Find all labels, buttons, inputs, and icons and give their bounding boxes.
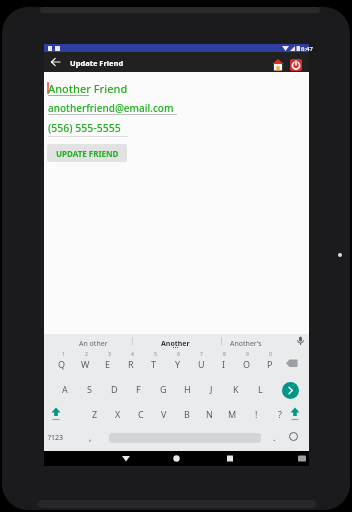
staticText: 1 [62, 351, 65, 358]
button[interactable]: N [201, 406, 217, 422]
button[interactable]: T [146, 356, 162, 372]
staticText: 2 [85, 351, 88, 358]
button[interactable]: Y [170, 356, 186, 372]
staticText: 0 [269, 351, 272, 358]
staticText: R [128, 358, 134, 370]
button[interactable]: G [155, 381, 171, 397]
staticText: Z [92, 408, 98, 420]
button[interactable]: R [123, 356, 139, 372]
button[interactable]: S [81, 381, 97, 397]
button[interactable] [282, 382, 299, 399]
staticText: B [184, 408, 190, 420]
button[interactable]: Another's [230, 339, 262, 349]
button[interactable]: P [262, 356, 278, 372]
staticText: O [243, 358, 251, 370]
button[interactable] [48, 54, 64, 70]
button[interactable]: W [77, 356, 93, 372]
staticText: M [228, 408, 237, 420]
button[interactable]: U [193, 356, 209, 372]
staticText: Q [58, 358, 66, 370]
button[interactable] [169, 452, 185, 465]
button[interactable]: . [273, 431, 276, 443]
staticText: A [62, 383, 68, 395]
button[interactable]: anotherfriend@email.com [48, 101, 174, 115]
staticText: Y [175, 358, 181, 370]
staticText: 9 [246, 351, 249, 358]
button[interactable] [289, 407, 301, 421]
button[interactable]: B [179, 406, 195, 422]
button[interactable]: D [106, 381, 122, 397]
button[interactable]: K [228, 381, 244, 397]
button[interactable] [50, 407, 62, 421]
staticText: S [87, 383, 92, 395]
button[interactable] [118, 452, 134, 465]
staticText: F [136, 383, 141, 395]
staticText: W [81, 358, 90, 370]
staticText: 5 [154, 351, 157, 358]
button[interactable]: UPDATE FRIEND [47, 144, 127, 162]
staticText: H [184, 383, 191, 395]
staticText: T [151, 358, 157, 370]
button[interactable] [289, 432, 298, 441]
button[interactable]: ? [272, 406, 288, 422]
staticText: ? [278, 408, 282, 420]
button[interactable]: O [239, 356, 255, 372]
button[interactable]: An other [79, 339, 108, 349]
staticText: C [138, 408, 144, 420]
staticText: 3 [108, 351, 111, 358]
button[interactable]: V [156, 406, 172, 422]
button[interactable]: M [224, 406, 240, 422]
button[interactable] [272, 59, 284, 71]
button[interactable]: I [216, 356, 232, 372]
staticText: 7 [200, 351, 203, 358]
staticText: X [115, 408, 121, 420]
staticText: Update Friend [70, 58, 124, 68]
staticText: 4 [131, 351, 134, 358]
staticText: V [161, 408, 167, 420]
button[interactable]: Q [54, 356, 70, 372]
button[interactable]: J [203, 381, 219, 397]
staticText: 8 [223, 351, 226, 358]
button[interactable]: Z [87, 406, 103, 422]
button[interactable]: ?123 [48, 433, 64, 443]
staticText: ! [255, 408, 258, 420]
staticText: D [111, 383, 118, 395]
button[interactable]: , [89, 431, 92, 443]
button[interactable]: X [110, 406, 126, 422]
staticText: K [233, 383, 239, 395]
staticText: 6 [177, 351, 180, 358]
button[interactable]: E [100, 356, 116, 372]
staticText: L [258, 383, 263, 395]
staticText: UPDATE FRIEND [56, 148, 119, 159]
staticText: J [210, 383, 213, 395]
staticText: P [267, 358, 273, 370]
button[interactable]: C [133, 406, 149, 422]
button[interactable]: Another [161, 339, 190, 349]
button[interactable] [223, 452, 239, 465]
staticText: 6:47 [301, 45, 313, 53]
staticText: N [206, 408, 213, 420]
button[interactable] [286, 359, 298, 368]
staticText: E [105, 358, 111, 370]
button[interactable]: (556) 555-5555 [48, 121, 121, 135]
button[interactable]: Another Friend [48, 81, 128, 96]
button[interactable] [290, 59, 302, 71]
button[interactable]: A [57, 381, 73, 397]
button[interactable]: F [130, 381, 146, 397]
staticText: U [198, 358, 205, 370]
staticText: G [160, 383, 167, 395]
button[interactable]: H [179, 381, 195, 397]
button[interactable]: L [252, 381, 268, 397]
staticText: I [222, 358, 226, 370]
button[interactable]: ! [248, 406, 264, 422]
